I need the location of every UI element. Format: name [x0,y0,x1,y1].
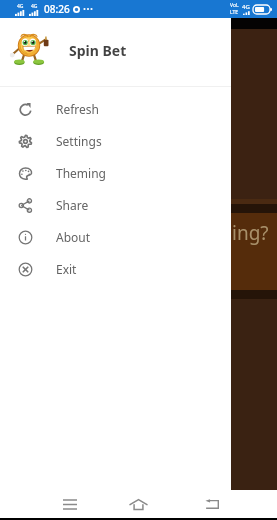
staticText: Are you feeling? [126,220,269,246]
button[interactable]: Home [117,490,160,518]
staticText: 08:26 [44,2,70,16]
staticText: Refresh [56,101,100,117]
staticText: LTE [230,9,239,16]
button[interactable]: Spin Bet [0,18,231,86]
staticText: 4G [242,3,250,11]
button[interactable]: Back [190,490,233,518]
button[interactable]: Settings [0,125,231,157]
button[interactable]: Refresh [0,93,231,125]
staticText: 4G [17,3,24,10]
staticText: VoL [230,2,239,9]
button[interactable]: Recent apps [48,490,91,518]
button[interactable]: Theming [0,157,231,189]
staticText: Settings [56,133,102,149]
button[interactable]: Exit [0,253,231,285]
button[interactable]: Share [0,189,231,221]
staticText: Share [56,197,89,213]
staticText: Theming [56,165,106,181]
staticText: Spin Bet [69,41,127,60]
staticText: 4G [31,3,38,10]
staticText: Exit [56,261,77,277]
staticText: About [56,229,91,245]
button[interactable]: About [0,221,231,253]
